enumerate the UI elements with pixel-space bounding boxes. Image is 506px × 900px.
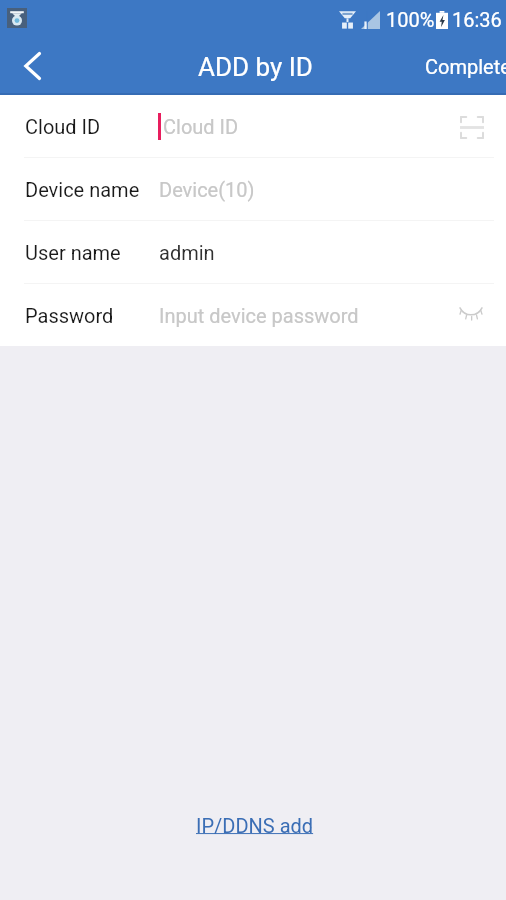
button[interactable]: Cloud ID [0,95,506,157]
staticText: Device(10) [159,178,255,201]
staticText: Password [25,304,114,327]
staticText: IP/DDNS add [196,814,314,837]
staticText: ADD by ID [198,52,313,82]
staticText: User name [25,241,121,264]
staticText: Cloud ID [163,115,239,138]
staticText: admin [159,241,215,264]
staticText: Complete [425,55,506,78]
button[interactable]: Device name [0,158,506,220]
button[interactable]: Scan QR code [448,95,506,157]
staticText: 100% [386,8,435,31]
button[interactable]: User name [0,221,506,283]
staticText: Cloud ID [25,115,101,138]
staticText: Input device password [159,304,359,327]
button[interactable]: Password [0,284,506,346]
button[interactable]: IP/DDNS add [190,810,320,841]
staticText: Device name [25,178,140,201]
button[interactable]: Complete [419,47,506,86]
button[interactable]: Show password [448,284,506,346]
button[interactable]: Back [0,38,62,95]
staticText: 16:36 [452,8,502,31]
